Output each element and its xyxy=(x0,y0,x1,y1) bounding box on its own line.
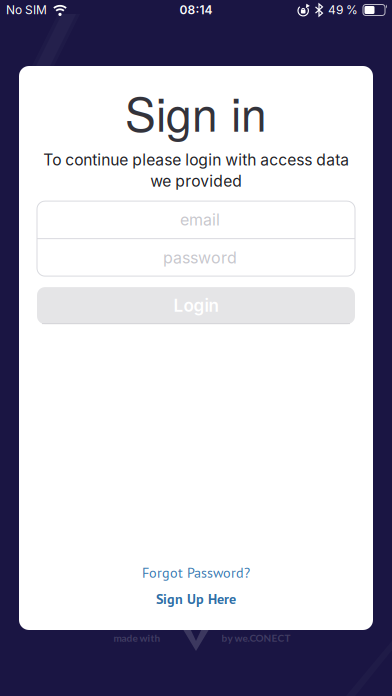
staticText: by we.CONECT xyxy=(221,632,290,644)
button[interactable]: Forgot Password? xyxy=(142,563,250,582)
staticText: 08:14 xyxy=(179,3,212,17)
staticText: email xyxy=(180,210,220,229)
staticText: 49 % xyxy=(328,3,358,17)
staticText: Forgot Password? xyxy=(142,563,250,582)
staticText: • xyxy=(37,248,46,267)
staticText: No SIM xyxy=(6,3,47,17)
staticText: Sign in xyxy=(125,79,267,145)
staticText xyxy=(37,210,42,229)
staticText: Sign Up Here xyxy=(156,590,236,608)
staticText: password xyxy=(163,248,237,267)
secureTextField[interactable] xyxy=(37,248,355,267)
staticText: Login xyxy=(173,295,218,316)
button[interactable]: Sign Up Here xyxy=(156,590,236,608)
textField[interactable] xyxy=(37,210,355,229)
staticText: To continue please login with access dat… xyxy=(43,150,349,191)
staticText: made with xyxy=(113,632,160,644)
button[interactable]: Login xyxy=(37,287,355,324)
